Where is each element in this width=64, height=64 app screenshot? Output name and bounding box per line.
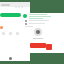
button[interactable]: Chat xyxy=(46,44,52,50)
button[interactable] xyxy=(0,13,21,17)
button[interactable] xyxy=(30,43,46,48)
